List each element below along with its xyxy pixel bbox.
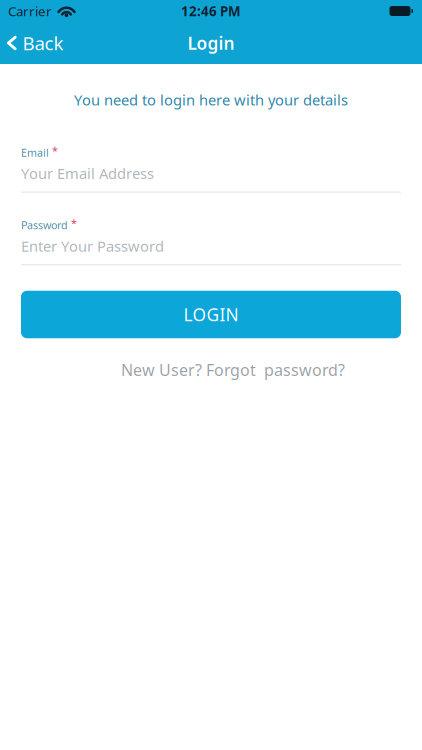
staticText: *	[52, 143, 58, 158]
staticText: Login	[187, 31, 234, 54]
staticText: New User? Forgot password?	[121, 359, 345, 380]
staticText: LOGIN	[183, 303, 238, 326]
button[interactable]: Back	[0, 31, 64, 55]
staticText: Your Email Address	[21, 164, 154, 183]
staticText: Password	[21, 218, 68, 232]
staticText: Back	[23, 31, 64, 55]
staticText: Carrier	[8, 2, 52, 20]
button[interactable]: LOGIN	[21, 291, 401, 338]
staticText: You need to login here with your details	[74, 90, 348, 109]
staticText: Enter Your Password	[21, 236, 164, 256]
staticText: 12:46 PM	[181, 2, 241, 20]
staticText: *	[71, 216, 77, 230]
button[interactable]: New User? Forgot password?	[21, 359, 401, 380]
staticText: Email	[21, 145, 49, 160]
